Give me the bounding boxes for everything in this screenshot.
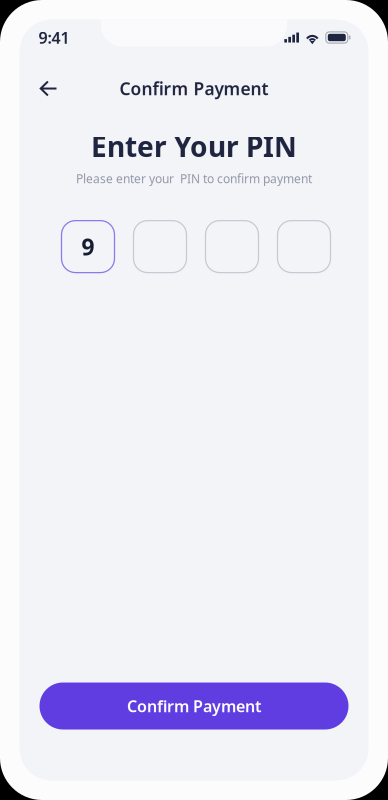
staticText: Enter Your PIN [91,127,297,165]
button[interactable]: Confirm Payment [39,682,348,729]
staticText: 9:41 [38,27,69,48]
button[interactable]: 9 [61,221,114,273]
staticText: Confirm Payment [119,77,268,100]
button[interactable] [277,221,330,273]
button[interactable] [205,221,258,273]
staticText: Please enter your PIN to confirm payment [76,171,312,187]
button[interactable] [133,221,186,273]
staticText: Confirm Payment [127,695,261,717]
staticText: 9 [81,232,94,262]
button[interactable]: Back [29,71,67,105]
